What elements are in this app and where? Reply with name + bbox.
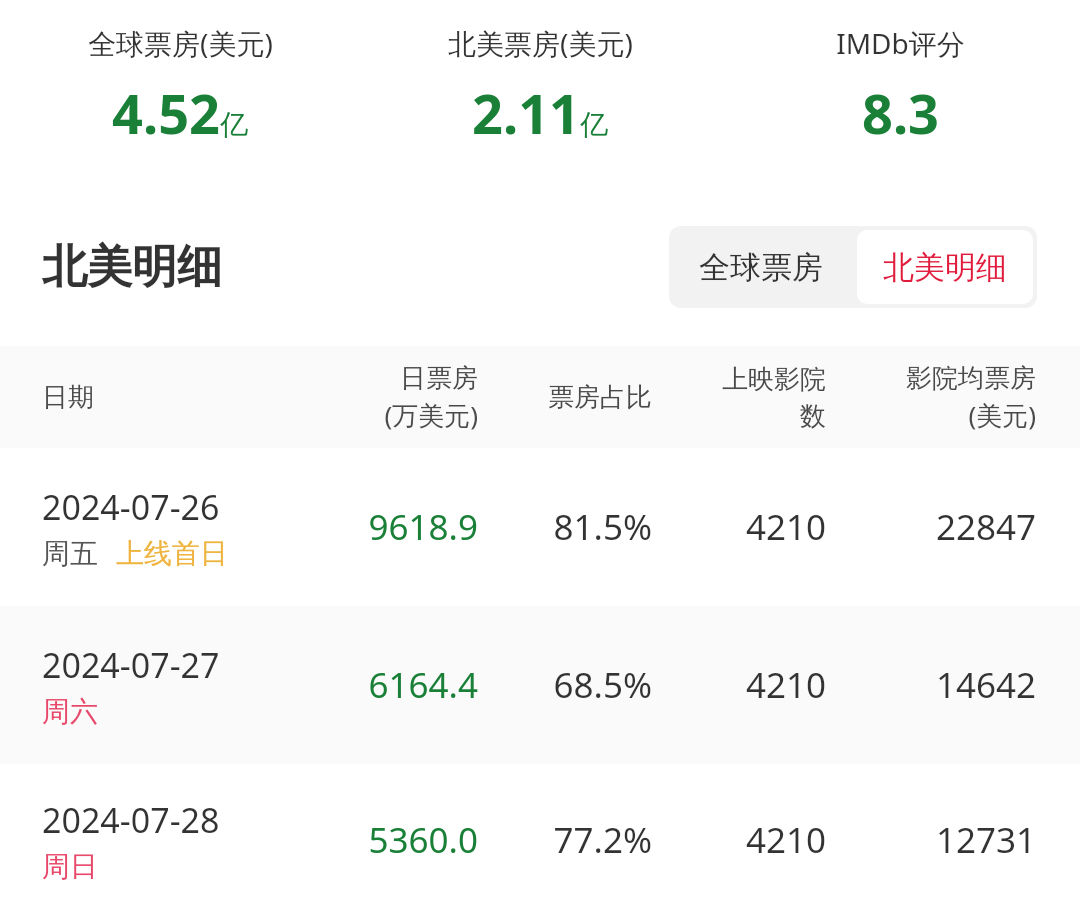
staticText: 12731 (826, 816, 1036, 864)
staticText: 68.5% (478, 661, 652, 709)
button[interactable]: 全球票房 (669, 226, 853, 308)
staticText: 2024-07-26 (42, 484, 220, 530)
staticText: 周六 (42, 694, 98, 729)
staticText: 票房占比 (478, 381, 652, 414)
staticText: 8.3 (862, 76, 939, 150)
staticText: 日票房 (万美元) (350, 362, 478, 433)
staticText: 5360.0 (350, 816, 478, 864)
staticText: 2024-07-27 (42, 642, 220, 688)
staticText: 北美明细 (883, 248, 1007, 287)
staticText: 4.52亿 (112, 76, 248, 150)
staticText: 4210 (652, 661, 826, 709)
staticText: 北美明细 (42, 239, 222, 296)
staticText: 6164.4 (350, 661, 478, 709)
staticText: 全球票房 (699, 248, 823, 287)
staticText: 4210 (652, 816, 826, 864)
button[interactable]: 2024-07-28 (0, 764, 1080, 916)
staticText: 全球票房(美元) (88, 24, 273, 62)
staticText: 14642 (826, 661, 1036, 709)
button[interactable]: 北美明细 (857, 230, 1033, 304)
staticText: 日期 (42, 381, 350, 414)
staticText: 北美票房(美元) (448, 24, 633, 62)
staticText: 周五 (42, 536, 98, 571)
staticText: IMDb评分 (836, 24, 965, 62)
staticText: 81.5% (478, 503, 652, 551)
staticText: 影院均票房 (美元) (826, 362, 1036, 433)
staticText: 77.2% (478, 816, 652, 864)
staticText: 2.11亿 (472, 76, 608, 150)
button[interactable]: 2024-07-27 (0, 606, 1080, 764)
staticText: 22847 (826, 503, 1036, 551)
staticText: 上映影院 数 (652, 363, 826, 432)
staticText: 2024-07-28 (42, 797, 220, 843)
button[interactable]: 2024-07-26 (0, 448, 1080, 606)
staticText: 9618.9 (350, 503, 478, 551)
staticText: 上线首日 (116, 536, 228, 571)
staticText: 4210 (652, 503, 826, 551)
staticText: 周日 (42, 849, 98, 884)
